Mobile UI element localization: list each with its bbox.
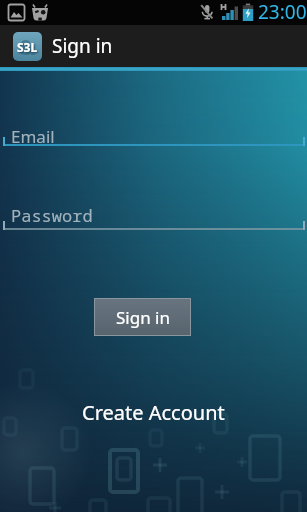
staticText: Sign in	[52, 33, 113, 59]
staticText: S3L	[17, 39, 38, 55]
button[interactable]: Create Account	[0, 398, 307, 426]
staticText: Create Account	[82, 399, 225, 426]
staticText: &	[19, 32, 36, 60]
button[interactable]: Email	[0, 112, 307, 147]
staticText: Password	[11, 204, 93, 227]
staticText: Email	[11, 125, 55, 148]
staticText: Sign in	[116, 306, 170, 329]
staticText: 23:00	[258, 0, 307, 24]
button[interactable]: Password	[0, 196, 307, 231]
button[interactable]: Sign in	[94, 298, 191, 336]
